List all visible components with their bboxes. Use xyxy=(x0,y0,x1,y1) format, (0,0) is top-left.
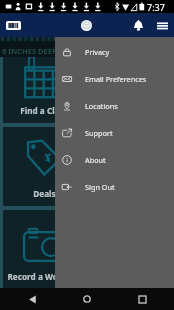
staticText: Sign Out xyxy=(85,182,115,192)
button[interactable]: Sign Out xyxy=(55,173,174,200)
button[interactable]: Recent apps xyxy=(132,289,152,309)
button[interactable]: Email Preferences xyxy=(55,65,174,92)
button[interactable]: Notifications xyxy=(126,13,150,37)
button[interactable]: About xyxy=(55,146,174,173)
staticText: Privacy xyxy=(85,47,110,57)
button[interactable]: Open navigation menu xyxy=(150,13,174,37)
staticText: Deals xyxy=(33,188,56,199)
button[interactable]: Privacy xyxy=(55,38,174,65)
button[interactable] xyxy=(92,127,174,206)
staticText: About xyxy=(85,155,106,165)
staticText: Support xyxy=(85,128,113,138)
button[interactable]: Back xyxy=(22,289,42,309)
button[interactable]: Logo xyxy=(81,20,92,31)
button[interactable]: Support xyxy=(55,119,174,146)
button[interactable]: Find a Class xyxy=(3,44,85,123)
staticText: 6 INCHES DEEP xyxy=(2,46,57,56)
staticText: 7:37 xyxy=(147,1,165,13)
button[interactable] xyxy=(92,210,174,289)
button[interactable] xyxy=(92,44,174,123)
staticText: Record a Workout xyxy=(7,271,81,282)
staticText: Email Preferences xyxy=(85,74,147,84)
staticText: Find a Class xyxy=(20,105,68,116)
button[interactable]: Home xyxy=(77,289,97,309)
button[interactable]: Locations xyxy=(55,92,174,119)
button[interactable]: Record a Workout xyxy=(3,210,85,289)
button[interactable]: Membership card xyxy=(3,15,24,36)
button[interactable]: Deals xyxy=(3,127,85,206)
staticText: Locations xyxy=(85,101,118,111)
